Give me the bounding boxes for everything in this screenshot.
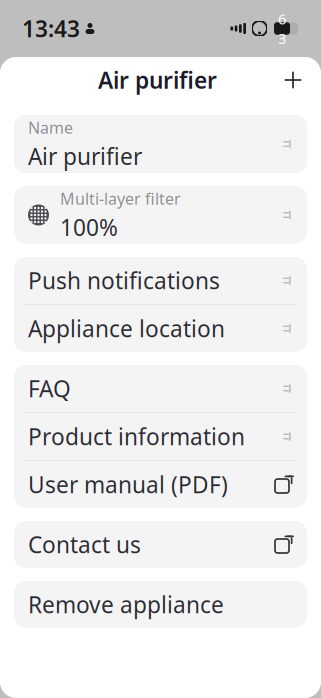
button[interactable]: Close (271, 58, 315, 102)
staticText: Air purifier (98, 65, 217, 95)
staticText: Contact us (28, 529, 141, 559)
button[interactable]: Product information (14, 413, 307, 460)
staticText: FAQ (28, 373, 71, 403)
staticText: Push notifications (28, 265, 220, 295)
button[interactable]: Contact us (14, 521, 307, 568)
staticText: Product information (28, 421, 245, 451)
button[interactable]: Push notifications (14, 257, 307, 304)
button[interactable]: User manual (PDF) (14, 461, 307, 508)
staticText: 100% (60, 212, 118, 242)
staticText: Air purifier (28, 141, 142, 171)
staticText: 63 (278, 9, 286, 48)
button[interactable]: Remove appliance (14, 581, 307, 628)
button[interactable]: Name (14, 115, 307, 173)
staticText: Multi-layer filter (60, 188, 181, 209)
staticText: 13:43 (22, 13, 80, 43)
staticText: User manual (PDF) (28, 469, 228, 499)
button[interactable]: Appliance location (14, 305, 307, 352)
staticText: Remove appliance (28, 589, 224, 619)
button[interactable]: Multi-layer filter (14, 186, 307, 244)
button[interactable]: FAQ (14, 365, 307, 412)
staticText: Appliance location (28, 313, 225, 343)
staticText: Name (28, 117, 73, 138)
